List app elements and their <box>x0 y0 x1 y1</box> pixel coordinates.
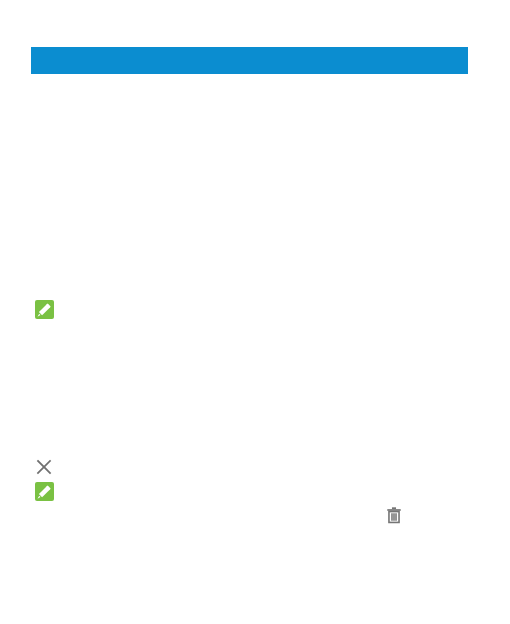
button[interactable]: Edit <box>35 482 54 501</box>
button[interactable]: Close <box>37 460 51 474</box>
button[interactable]: Edit <box>35 300 54 319</box>
button[interactable]: Delete <box>387 507 401 523</box>
